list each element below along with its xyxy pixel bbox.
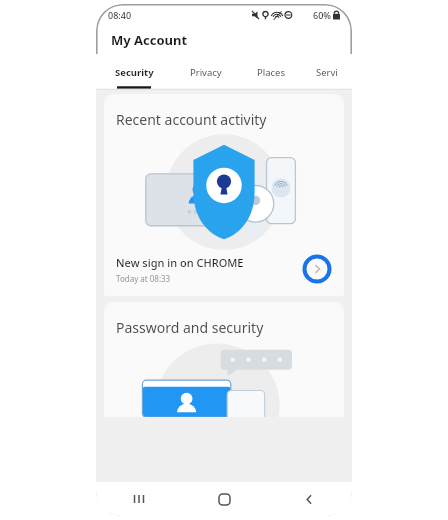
staticText: New sign in on CHROME <box>116 255 244 270</box>
button[interactable]: Servi <box>302 54 352 90</box>
staticText: Privacy <box>190 66 222 79</box>
staticText: Security <box>115 66 154 79</box>
button[interactable]: View details <box>302 254 332 284</box>
button[interactable]: Privacy <box>172 54 240 90</box>
staticText: Servi <box>316 66 338 79</box>
staticText: My Account <box>111 31 188 49</box>
staticText: 08:40 <box>108 9 132 21</box>
staticText: 60% <box>313 9 331 21</box>
staticText: Places <box>257 66 285 79</box>
button[interactable]: Places <box>240 54 302 90</box>
button[interactable]: Home <box>182 482 267 516</box>
button[interactable]: Recent account activity <box>104 94 344 296</box>
staticText: Password and security <box>116 318 264 337</box>
staticText: Recent account activity <box>116 110 267 129</box>
button[interactable]: Security <box>96 54 172 90</box>
button[interactable]: Recents <box>96 482 182 516</box>
button[interactable]: Back <box>267 482 352 516</box>
staticText: Today at 08:33 <box>116 273 171 284</box>
button[interactable]: Password and security <box>104 302 344 417</box>
